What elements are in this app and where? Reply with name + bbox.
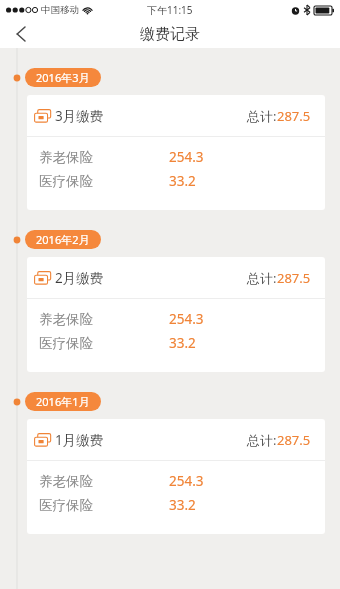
staticText: 2016年3月 — [36, 70, 90, 85]
staticText: 医疗保险 — [39, 497, 93, 514]
staticText: 254.3 — [169, 310, 204, 328]
staticText: 总计: — [247, 107, 277, 125]
staticText: 养老保险 — [39, 473, 93, 490]
staticText: 33.2 — [169, 172, 196, 190]
button[interactable]: 2月缴费 — [27, 257, 325, 372]
button[interactable]: 1月缴费 — [27, 419, 325, 534]
staticText: 287.5 — [277, 431, 311, 449]
staticText: 缴费记录 — [140, 25, 200, 44]
staticText: 养老保险 — [39, 311, 93, 328]
staticText: 医疗保险 — [39, 173, 93, 190]
button[interactable]: 2016年2月 — [25, 230, 101, 249]
staticText: 下午11:15 — [147, 3, 193, 17]
staticText: 总计: — [247, 431, 277, 449]
button[interactable]: Back — [0, 20, 40, 48]
staticText: 287.5 — [277, 107, 311, 125]
button[interactable]: 3月缴费 — [27, 95, 325, 210]
staticText: 医疗保险 — [39, 335, 93, 352]
staticText: 3月缴费 — [55, 107, 104, 125]
staticText: 33.2 — [169, 334, 196, 352]
staticText: 287.5 — [277, 269, 311, 287]
staticText: 养老保险 — [39, 149, 93, 166]
staticText: 33.2 — [169, 496, 196, 514]
staticText: 2016年2月 — [36, 232, 90, 247]
staticText: 2016年1月 — [36, 394, 90, 409]
staticText: 1月缴费 — [55, 431, 104, 449]
staticText: 254.3 — [169, 472, 204, 490]
staticText: 中国移动 — [41, 4, 79, 16]
staticText: 总计: — [247, 269, 277, 287]
button[interactable]: 2016年1月 — [25, 392, 101, 411]
staticText: 2月缴费 — [55, 269, 104, 287]
staticText: 254.3 — [169, 148, 204, 166]
button[interactable]: 2016年3月 — [25, 68, 101, 87]
